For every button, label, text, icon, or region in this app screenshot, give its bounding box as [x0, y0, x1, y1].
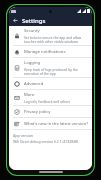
staticText: Set locks to secure the app and allow to… [24, 35, 89, 43]
button[interactable]: Advanced [9, 78, 92, 90]
button[interactable]: More [9, 90, 92, 106]
staticText: Privacy policy [24, 109, 51, 115]
button[interactable]: Security [9, 26, 92, 46]
button[interactable]: Logging [9, 58, 92, 78]
staticText: Manage notifications [24, 49, 66, 55]
staticText: Logging [24, 60, 41, 66]
staticText: Settings [22, 17, 46, 25]
staticText: App version [13, 133, 34, 138]
staticText: Advanced [24, 81, 44, 87]
button[interactable]: Manage notifications [9, 46, 92, 58]
staticText: Keep track of logs produced by the execu… [24, 67, 89, 75]
staticText: Log info, feedback and others [24, 99, 71, 103]
staticText: Wifi Direct debug version 6.2.1 (4742848… [13, 139, 79, 144]
button[interactable]: Privacy policy [9, 106, 92, 118]
staticText: More [24, 92, 35, 98]
button[interactable]: Back [11, 16, 20, 25]
staticText: Security [24, 28, 40, 34]
staticText: What's new in the latest version? [24, 121, 89, 127]
button[interactable]: What's new in the latest version? [9, 118, 92, 130]
